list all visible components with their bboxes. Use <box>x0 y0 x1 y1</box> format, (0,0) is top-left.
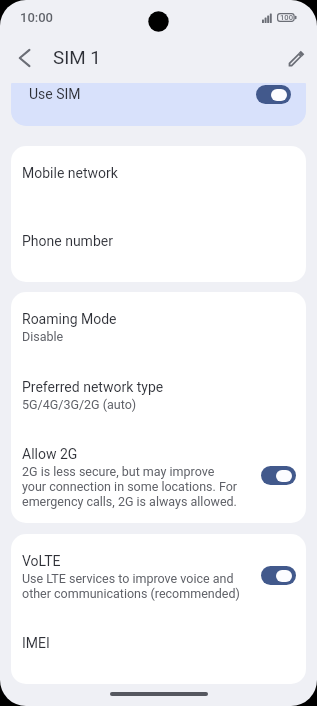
button[interactable]: Toggle <box>261 466 296 485</box>
button[interactable]: Toggle <box>256 85 291 104</box>
staticText: Phone number <box>22 233 113 249</box>
button[interactable]: IMEI <box>11 616 306 684</box>
staticText: 5G/4G/3G/2G (auto) <box>22 397 137 412</box>
button[interactable]: Allow 2G <box>11 427 306 523</box>
staticText: Roaming Mode <box>22 311 117 327</box>
button[interactable]: Edit <box>282 44 310 72</box>
staticText: Preferred network type <box>22 379 164 395</box>
button[interactable]: Use SIM <box>11 83 306 126</box>
staticText: 100 <box>280 13 293 22</box>
staticText: IMEI <box>22 635 50 651</box>
staticText: Disable <box>22 329 64 344</box>
button[interactable]: Mobile network <box>11 146 306 214</box>
staticText: 10:00 <box>20 10 54 25</box>
button[interactable]: VoLTE <box>11 534 306 616</box>
staticText: 2G is less secure, but may improve your … <box>22 464 238 509</box>
button[interactable]: Toggle <box>261 566 296 585</box>
button[interactable]: Roaming Mode <box>11 292 306 360</box>
staticText: SIM 1 <box>53 47 101 69</box>
button[interactable]: Preferred network type <box>11 360 306 427</box>
staticText: Use LTE services to improve voice and ot… <box>22 571 240 601</box>
staticText: Use SIM <box>29 86 81 102</box>
button[interactable]: Back <box>9 44 37 72</box>
staticText: Allow 2G <box>22 446 78 462</box>
button[interactable]: Phone number <box>11 214 306 282</box>
staticText: Mobile network <box>22 165 118 181</box>
staticText: VoLTE <box>22 553 61 569</box>
